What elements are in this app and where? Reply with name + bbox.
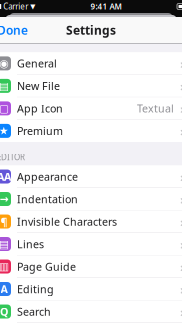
staticText: Search <box>17 304 51 319</box>
staticText: › <box>180 99 182 117</box>
staticText: › <box>180 280 182 298</box>
staticText: Settings <box>66 22 116 38</box>
staticText: Premium <box>17 124 63 138</box>
staticText: Page Guide <box>17 259 76 274</box>
button[interactable]: Done <box>0 18 36 42</box>
staticText: Indentation <box>17 192 78 206</box>
staticText: ▤ <box>0 80 9 92</box>
staticText: EDITOR <box>0 152 25 162</box>
staticText: › <box>180 303 182 320</box>
staticText: General <box>17 56 57 70</box>
staticText: › <box>180 168 182 185</box>
staticText: → <box>0 193 8 205</box>
button[interactable]: ▢ <box>0 97 182 120</box>
staticText: Done <box>0 22 28 38</box>
staticText: Appearance <box>17 169 78 184</box>
button[interactable]: ▤ <box>0 233 182 255</box>
staticText: ▢ <box>0 102 9 114</box>
staticText: Invisible Characters <box>17 214 117 229</box>
staticText: ¶ <box>0 214 7 229</box>
staticText: › <box>180 190 182 208</box>
staticText: › <box>180 213 182 230</box>
button[interactable]: A <box>0 278 182 300</box>
button[interactable]: ★ <box>0 120 182 142</box>
staticText: › <box>180 54 182 72</box>
staticText: Editing <box>17 282 54 296</box>
staticText: New File <box>17 79 60 93</box>
staticText: A <box>0 282 7 296</box>
button[interactable]: ◉ <box>0 52 182 75</box>
staticText: Q <box>0 304 8 319</box>
staticText: Carrier <box>3 1 28 12</box>
staticText: › <box>180 258 182 275</box>
staticText: App Icon <box>17 101 63 115</box>
staticText: › <box>180 122 182 140</box>
staticText: › <box>180 77 182 95</box>
button[interactable]: ¶ <box>0 210 182 233</box>
button[interactable]: AA <box>0 165 182 188</box>
button[interactable]: ▥ <box>0 255 182 278</box>
staticText: ▤ <box>0 238 9 250</box>
staticText: 9:41 AM <box>91 1 122 12</box>
staticText: ★ <box>0 125 9 137</box>
button[interactable]: Q <box>0 300 182 323</box>
button[interactable]: → <box>0 188 182 210</box>
staticText: ◉ <box>0 57 8 69</box>
staticText: ▼ <box>30 3 35 10</box>
staticText: Lines <box>17 237 44 251</box>
staticText: ▥ <box>0 260 9 273</box>
staticText: Textual <box>137 101 174 115</box>
button[interactable]: ▤ <box>0 75 182 97</box>
staticText: AA <box>0 169 11 184</box>
staticText: › <box>180 235 182 253</box>
